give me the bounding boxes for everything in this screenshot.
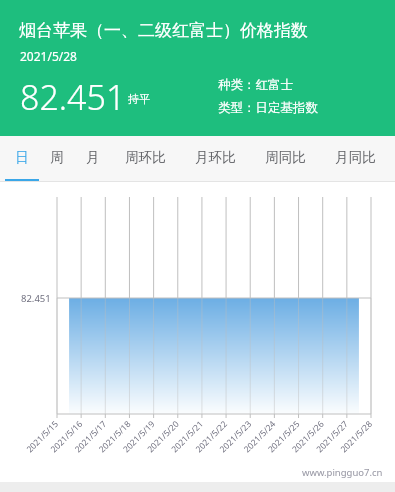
staticText: 持平 <box>128 92 150 106</box>
button[interactable]: 日 <box>9 136 34 182</box>
staticText: 周同比 <box>265 149 306 166</box>
staticText: 月环比 <box>195 149 236 166</box>
staticText: 烟台苹果（一、二级红富士）价格指数 <box>19 20 308 41</box>
staticText: 种类：红富士 <box>218 77 293 93</box>
button[interactable]: 周同比 <box>260 136 311 182</box>
staticText: 月同比 <box>335 149 376 166</box>
staticText: 周环比 <box>125 149 166 166</box>
button[interactable]: 月环比 <box>190 136 241 182</box>
button[interactable]: 月同比 <box>330 136 381 182</box>
staticText: 2021/5/28 <box>20 48 77 64</box>
staticText: 月 <box>86 149 100 166</box>
button[interactable]: 月 <box>80 136 105 182</box>
staticText: 周 <box>50 149 64 166</box>
button[interactable]: 周 <box>44 136 69 182</box>
button[interactable]: 周环比 <box>120 136 171 182</box>
staticText: 82.451 <box>20 74 126 120</box>
staticText: 类型：日定基指数 <box>218 100 318 116</box>
staticText: 日 <box>15 149 29 166</box>
